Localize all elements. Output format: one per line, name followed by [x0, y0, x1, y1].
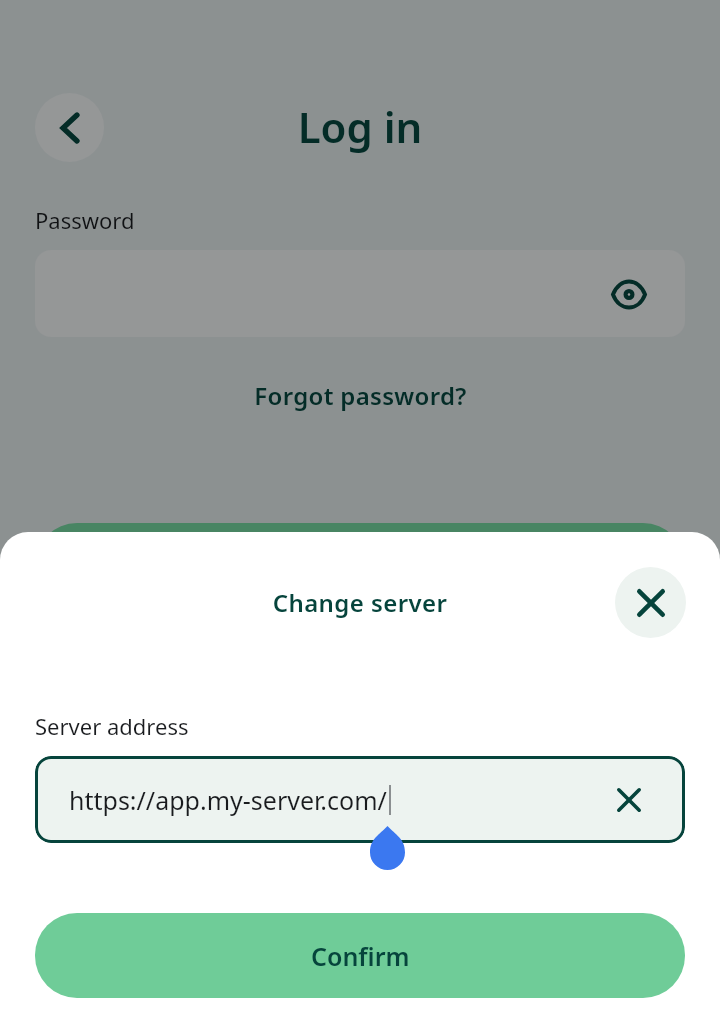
staticText: https://app.my-server.com/ [69, 783, 387, 817]
button[interactable]: Back [35, 93, 104, 162]
button[interactable]: Show password [35, 250, 685, 337]
button[interactable]: https://app.my-server.com/ [35, 756, 685, 843]
button[interactable]: Close [615, 567, 686, 638]
staticText: Change server [0, 586, 720, 619]
staticText: Forgot password? [254, 379, 467, 411]
button[interactable]: Forgot password? [0, 379, 720, 411]
staticText: Server address [35, 711, 189, 741]
button[interactable]: Show password [601, 266, 657, 322]
button[interactable] [35, 523, 685, 608]
staticText: Password [35, 205, 135, 235]
button[interactable]: Clear text [605, 776, 653, 824]
staticText: Log in [0, 98, 720, 155]
button[interactable]: Confirm [35, 913, 685, 998]
staticText: Confirm [311, 939, 410, 973]
